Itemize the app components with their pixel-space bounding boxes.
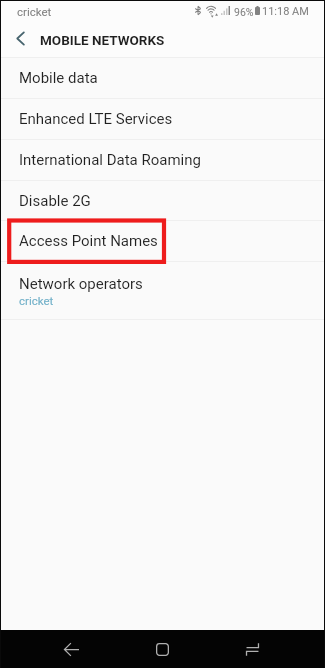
button[interactable]: Mobile data <box>1 58 324 98</box>
staticText: cricket <box>17 5 52 18</box>
staticText: Network operators <box>19 275 143 293</box>
button[interactable]: Recent apps <box>230 630 274 668</box>
button[interactable]: Home <box>140 630 184 668</box>
staticText: Enhanced LTE Services <box>19 110 173 128</box>
staticText: 11:18 AM <box>262 5 309 18</box>
button[interactable]: Access Point Names <box>1 221 324 261</box>
staticText: Disable 2G <box>19 192 91 210</box>
staticText: Access Point Names <box>19 232 158 250</box>
button[interactable]: Network operators <box>1 262 324 319</box>
staticText: Mobile data <box>19 69 98 87</box>
button[interactable]: International Data Roaming <box>1 140 324 180</box>
staticText: 96% <box>234 6 254 18</box>
button[interactable]: Enhanced LTE Services <box>1 99 324 139</box>
staticText: International Data Roaming <box>19 151 201 169</box>
button[interactable]: Navigate up <box>6 24 35 53</box>
staticText: cricket <box>19 294 54 307</box>
button[interactable]: Disable 2G <box>1 181 324 220</box>
staticText: MOBILE NETWORKS <box>40 32 165 48</box>
button[interactable]: Back <box>49 630 93 668</box>
